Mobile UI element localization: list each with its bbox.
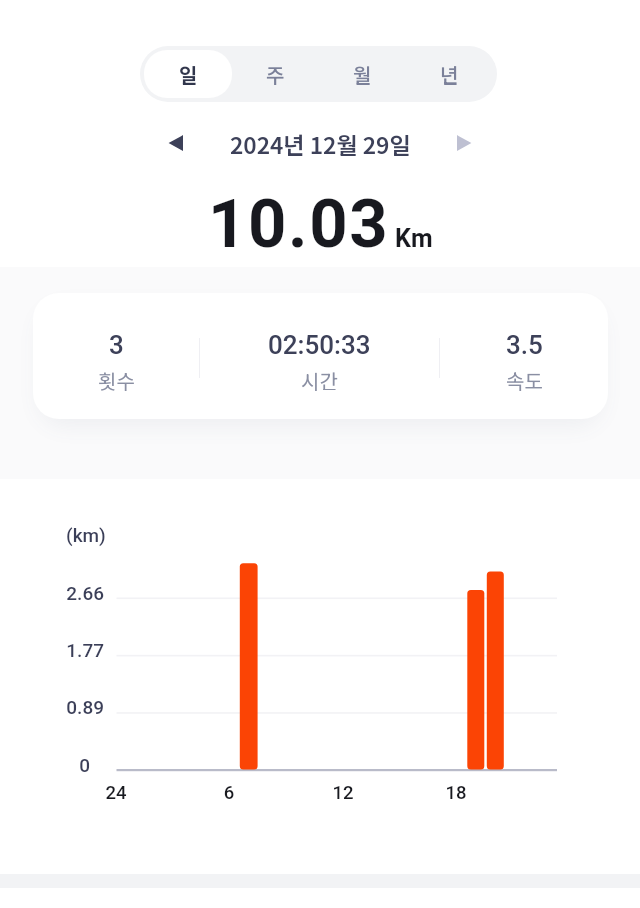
staticText: 3 [109,330,124,360]
staticText: 12 [303,782,383,804]
staticText: 18 [416,782,496,804]
staticText: 횟수 [98,366,135,395]
staticText: 2.66 [0,582,104,604]
staticText: 0 [0,754,90,776]
staticText: 24 [76,782,156,804]
staticText: 02:50:33 [268,330,371,360]
staticText: 시간 [301,366,338,395]
staticText: 2024년 12월 29일 [230,127,411,160]
button[interactable]: 월 [319,50,406,98]
staticText: Km [395,224,433,253]
button[interactable]: 2024년 12월 29일 [180,122,460,164]
button[interactable]: 3 [33,293,200,419]
button[interactable]: 일 [144,50,232,98]
button[interactable]: Next day [442,122,484,164]
staticText: 주 [266,60,285,89]
staticText: 3.5 [506,330,543,360]
button[interactable]: 3.5 [440,293,608,419]
button[interactable]: 년 [406,50,493,98]
staticText: 일 [179,60,198,89]
button[interactable]: 02:50:33 [200,293,439,419]
staticText: 0.89 [0,696,104,718]
staticText: 년 [440,60,459,89]
button[interactable]: Previous day [155,122,197,164]
staticText: 6 [189,782,269,804]
button[interactable]: 주 [232,50,319,98]
staticText: 1.77 [0,639,104,661]
staticText: (km) [66,524,186,546]
staticText: 월 [353,60,372,89]
staticText: 10.03 [208,185,390,255]
staticText: 속도 [506,366,543,395]
